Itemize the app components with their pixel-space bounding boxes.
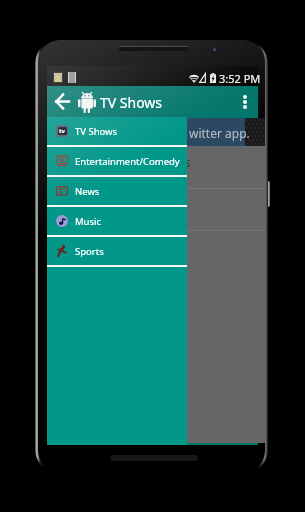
button[interactable]: News	[47, 177, 187, 205]
staticText: witter app.	[189, 125, 250, 141]
button[interactable]: More options	[232, 86, 258, 117]
staticText: Entertainment/Comedy	[75, 155, 180, 168]
staticText: 3:52 PM	[219, 71, 261, 86]
staticText: TV Shows	[75, 125, 118, 138]
staticText: News	[75, 185, 100, 198]
staticText: TV Shows	[100, 93, 163, 112]
staticText: tv	[59, 127, 66, 135]
staticText: Music	[75, 215, 102, 228]
button[interactable]: Back	[49, 86, 75, 117]
button[interactable]: tv	[47, 117, 187, 145]
button[interactable]: Music	[47, 207, 187, 235]
button[interactable]: Entertainment/Comedy	[47, 147, 187, 175]
staticText: s	[185, 154, 191, 170]
button[interactable]: Sports	[47, 237, 187, 265]
staticText: Sports	[75, 245, 104, 258]
